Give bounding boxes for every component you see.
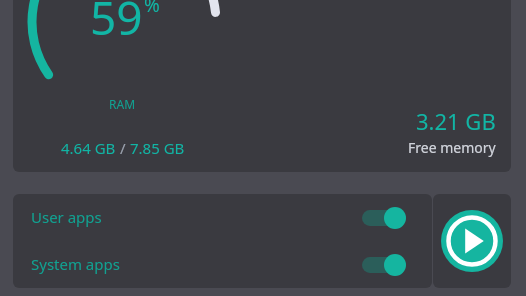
button[interactable] [13,0,511,172]
staticText: 59 [90,0,143,49]
button[interactable]: System apps [13,241,432,288]
staticText: / [116,138,130,158]
staticText: User apps [31,207,102,227]
staticText: % [144,0,160,18]
button[interactable]: Start cleaning [433,194,511,288]
staticText: Free memory [408,138,496,157]
staticText: 3.21 GB [416,106,496,136]
staticText: RAM [109,96,136,112]
button[interactable]: User apps [13,194,432,241]
staticText: System apps [31,254,120,274]
staticText: 4.64 GB [61,138,116,158]
staticText: 7.85 GB [130,138,185,158]
